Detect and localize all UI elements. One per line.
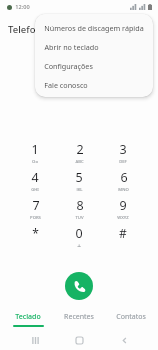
- button[interactable]: 5: [62, 169, 96, 191]
- button[interactable]: 4: [18, 169, 52, 191]
- button[interactable]: Configurações: [35, 56, 153, 75]
- staticText: Telefone: [8, 23, 47, 36]
- button[interactable]: Teclado: [4, 310, 52, 330]
- button[interactable]: *: [18, 225, 52, 247]
- button[interactable]: 0: [62, 225, 96, 247]
- staticText: DEF: [119, 159, 127, 163]
- button[interactable]: 9: [106, 197, 140, 219]
- staticText: 9: [119, 197, 127, 214]
- staticText: TUV: [75, 215, 84, 219]
- button[interactable]: Call: [65, 272, 93, 300]
- button[interactable]: 8: [62, 197, 96, 219]
- staticText: *: [32, 225, 39, 241]
- staticText: PQRS: [30, 215, 41, 219]
- staticText: #: [119, 225, 127, 241]
- staticText: 1: [31, 141, 39, 158]
- button[interactable]: Fale conosco: [35, 75, 153, 94]
- staticText: GHI: [31, 187, 39, 191]
- staticText: 12:00: [15, 3, 30, 11]
- staticText: JKL: [76, 187, 83, 191]
- button[interactable]: Recentes: [55, 310, 103, 330]
- staticText: 2: [76, 141, 84, 158]
- staticText: WXYZ: [117, 215, 129, 219]
- staticText: Qо: [32, 159, 38, 163]
- staticText: 8: [76, 197, 84, 214]
- staticText: Recentes: [64, 312, 94, 322]
- button[interactable]: 6: [106, 169, 140, 191]
- staticText: Abrir no teclado: [44, 42, 99, 52]
- staticText: 3: [119, 141, 127, 158]
- button[interactable]: Home: [69, 330, 89, 350]
- staticText: Fale conosco: [44, 80, 88, 90]
- staticText: 6: [120, 169, 128, 186]
- button[interactable]: 2: [62, 141, 96, 163]
- staticText: ABC: [75, 159, 84, 163]
- button[interactable]: Números de discagem rápida: [35, 18, 153, 37]
- button[interactable]: #: [106, 225, 140, 247]
- staticText: 4: [31, 169, 39, 186]
- button[interactable]: 1: [18, 141, 52, 163]
- button[interactable]: Back: [114, 330, 134, 350]
- staticText: 7: [32, 197, 40, 214]
- staticText: 5: [75, 169, 83, 186]
- button[interactable]: Recent apps: [25, 330, 45, 350]
- button[interactable]: Contatos: [107, 310, 155, 330]
- staticText: +: [77, 242, 81, 247]
- staticText: 0: [75, 225, 83, 242]
- button[interactable]: 7: [18, 197, 52, 219]
- staticText: Configurações: [44, 61, 93, 71]
- staticText: Contatos: [116, 312, 146, 322]
- staticText: Teclado: [15, 312, 41, 322]
- button[interactable]: 3: [106, 141, 140, 163]
- button[interactable]: Abrir no teclado: [35, 37, 153, 56]
- staticText: MNO: [118, 187, 129, 191]
- staticText: Números de discagem rápida: [44, 23, 144, 33]
